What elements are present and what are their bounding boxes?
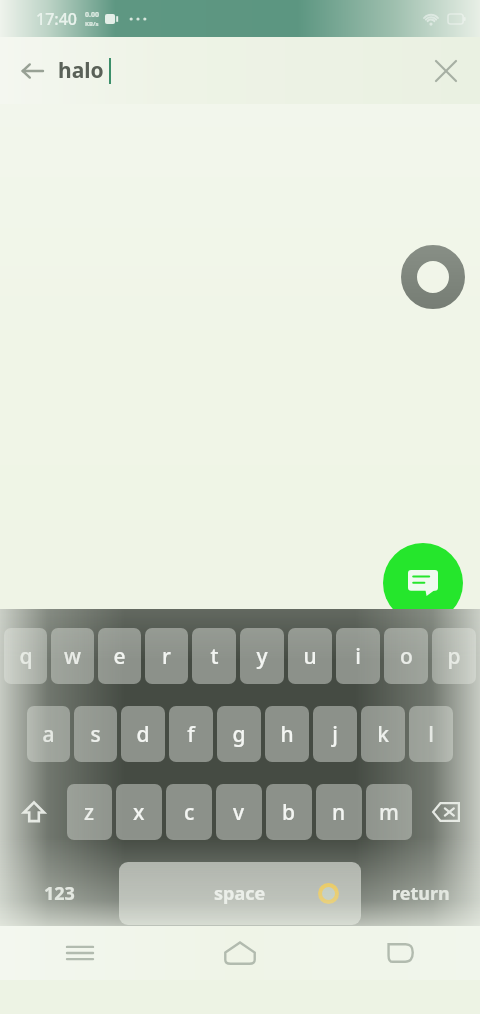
button[interactable]: p — [432, 628, 476, 684]
button[interactable]: y — [240, 628, 284, 684]
button[interactable]: Clear — [422, 47, 470, 95]
button[interactable]: l — [409, 706, 453, 762]
staticText: 17:40 — [36, 8, 77, 30]
staticText: h — [280, 720, 294, 749]
button[interactable]: k — [361, 706, 405, 762]
staticText: d — [136, 720, 150, 749]
staticText: n — [332, 798, 346, 827]
staticText: m — [379, 798, 399, 827]
staticText: u — [303, 642, 317, 671]
button[interactable]: z — [67, 784, 112, 840]
button[interactable]: Back — [8, 47, 56, 95]
staticText: halo — [58, 56, 104, 85]
staticText: 0.00 — [85, 10, 99, 20]
button[interactable]: Back — [320, 926, 480, 980]
button[interactable]: c — [166, 784, 212, 840]
staticText: y — [256, 642, 268, 671]
button[interactable]: o — [384, 628, 428, 684]
staticText: c — [184, 798, 195, 827]
button[interactable]: e — [98, 628, 141, 684]
button[interactable]: i — [336, 628, 380, 684]
staticText: e — [113, 642, 126, 671]
staticText: o — [400, 642, 413, 671]
staticText: r — [162, 642, 171, 671]
staticText: g — [232, 720, 246, 749]
staticText: return — [392, 881, 450, 906]
staticText: j — [332, 720, 338, 749]
staticText: z — [84, 798, 95, 827]
staticText: t — [210, 642, 219, 671]
button[interactable]: t — [192, 628, 236, 684]
button[interactable]: j — [313, 706, 357, 762]
button[interactable]: g — [217, 706, 261, 762]
staticText: p — [447, 642, 461, 671]
button[interactable]: 123 — [4, 862, 115, 925]
button[interactable]: a — [27, 706, 70, 762]
button[interactable]: Shift — [4, 784, 63, 840]
button[interactable]: u — [288, 628, 332, 684]
button[interactable]: h — [265, 706, 309, 762]
button[interactable]: return — [365, 862, 476, 925]
staticText: x — [133, 798, 145, 827]
button[interactable]: v — [216, 784, 262, 840]
button[interactable]: r — [145, 628, 188, 684]
button[interactable]: d — [121, 706, 165, 762]
button[interactable]: m — [366, 784, 412, 840]
button[interactable]: w — [51, 628, 94, 684]
button[interactable]: n — [316, 784, 362, 840]
staticText: 123 — [44, 881, 75, 906]
staticText: v — [233, 798, 245, 827]
button[interactable]: Home — [160, 926, 320, 980]
staticText: b — [282, 798, 296, 827]
staticText: f — [187, 720, 195, 749]
staticText: KB/s — [85, 20, 99, 28]
button[interactable]: f — [169, 706, 213, 762]
staticText: l — [428, 720, 434, 749]
button[interactable]: Recents — [0, 926, 160, 980]
staticText: space — [214, 881, 266, 906]
button[interactable]: Backspace — [416, 784, 476, 840]
staticText: s — [90, 720, 101, 749]
staticText: a — [42, 720, 55, 749]
staticText: i — [355, 642, 361, 671]
staticText: k — [377, 720, 389, 749]
button[interactable]: s — [74, 706, 117, 762]
staticText: w — [64, 642, 81, 671]
button[interactable]: q — [4, 628, 47, 684]
button[interactable]: b — [266, 784, 312, 840]
button[interactable]: space — [119, 862, 361, 925]
staticText: q — [19, 642, 33, 671]
button[interactable]: New conversation — [383, 543, 463, 623]
button[interactable]: x — [116, 784, 162, 840]
